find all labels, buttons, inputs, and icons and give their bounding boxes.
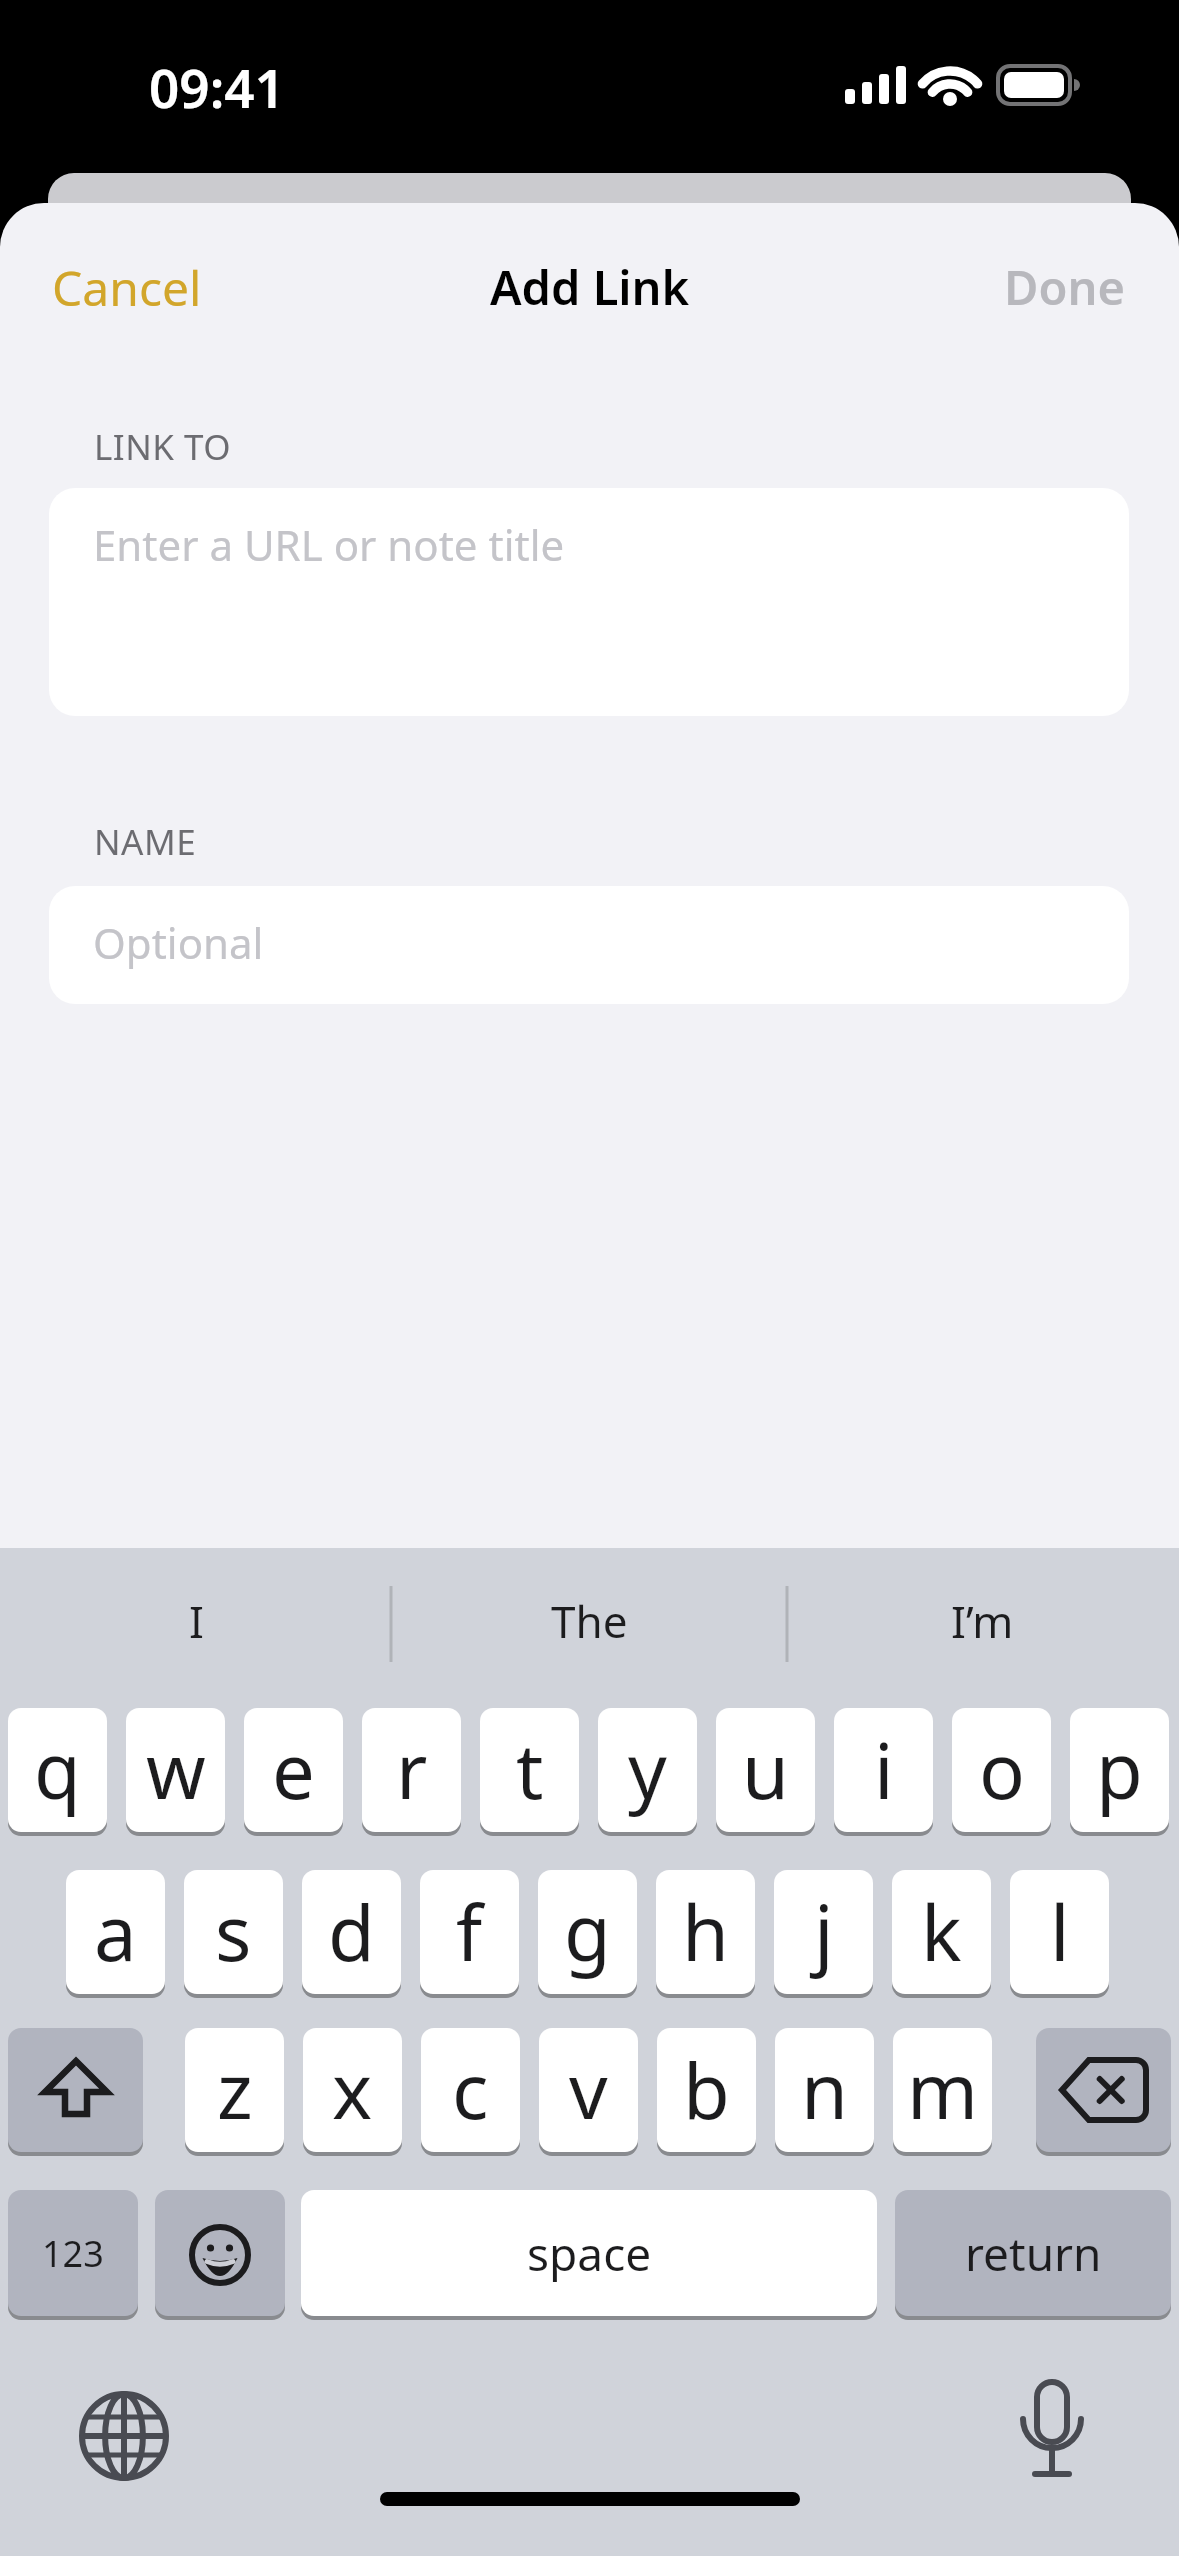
staticText: z xyxy=(217,2038,253,2142)
staticText: m xyxy=(907,2038,979,2142)
staticText: c xyxy=(452,2038,489,2142)
staticText: y xyxy=(628,1718,667,1822)
staticText: Cancel xyxy=(52,255,202,320)
staticText: e xyxy=(272,1718,315,1822)
staticText: space xyxy=(527,2222,652,2285)
staticText: q xyxy=(34,1718,81,1822)
staticText: The xyxy=(551,1591,628,1647)
staticText: Add Link xyxy=(490,255,690,313)
staticText: Done xyxy=(1004,255,1125,319)
staticText: j xyxy=(814,1880,834,1984)
staticText: Optional xyxy=(93,914,264,971)
staticText: 123 xyxy=(42,2229,104,2278)
staticText: o xyxy=(979,1718,1025,1822)
staticText: LINK TO xyxy=(94,423,232,471)
staticText: I’m xyxy=(951,1591,1014,1647)
staticText: i xyxy=(874,1718,894,1822)
staticText: r xyxy=(396,1718,428,1822)
staticText: v xyxy=(569,2038,608,2142)
staticText: f xyxy=(456,1880,483,1984)
staticText: g xyxy=(564,1880,611,1984)
staticText: n xyxy=(801,2038,848,2142)
staticText: u xyxy=(742,1718,789,1822)
staticText: w xyxy=(146,1718,206,1822)
staticText: t xyxy=(516,1718,544,1822)
staticText: a xyxy=(94,1880,137,1984)
staticText: NAME xyxy=(94,818,197,866)
staticText: k xyxy=(921,1880,962,1984)
staticText: p xyxy=(1096,1718,1143,1822)
staticText: l xyxy=(1050,1880,1070,1984)
staticText: Enter a URL or note title xyxy=(93,516,565,573)
staticText: x xyxy=(332,2038,373,2142)
staticText: I xyxy=(189,1591,204,1647)
staticText: s xyxy=(215,1880,252,1984)
staticText: b xyxy=(683,2038,730,2142)
staticText: h xyxy=(682,1880,729,1984)
staticText: 09:41 xyxy=(149,51,285,123)
staticText: return xyxy=(965,2222,1102,2285)
staticText: d xyxy=(328,1880,375,1984)
